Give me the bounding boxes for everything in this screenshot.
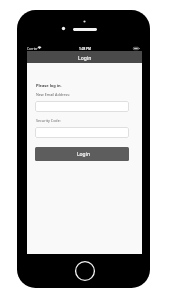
button[interactable]: Login [35,147,129,161]
staticText: Carrier [27,46,38,50]
staticText: New Email Address: [36,92,71,97]
button[interactable] [35,127,129,138]
staticText: Security Code: [36,118,61,123]
button[interactable] [35,101,129,112]
button[interactable]: Home [75,261,95,281]
staticText: 1:28 PM [79,47,91,51]
staticText: Login [77,151,91,158]
staticText: Login [78,55,92,62]
staticText: Please log in. [36,83,62,88]
